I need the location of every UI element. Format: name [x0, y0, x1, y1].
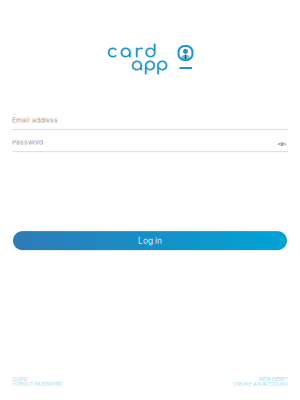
- staticText: Log in: [138, 236, 162, 246]
- staticText: OOPS!: [12, 376, 27, 382]
- button[interactable]: NEW HERE?: [233, 376, 288, 387]
- button[interactable]: Log in: [13, 231, 287, 250]
- staticText: CREATE AN ACCOUNT: [233, 381, 288, 387]
- staticText: card: [106, 41, 157, 62]
- staticText: NEW HERE?: [259, 376, 288, 382]
- button[interactable]: Show password: [280, 140, 288, 145]
- staticText: FORGOT PASSWORD: [12, 381, 63, 387]
- staticText: app: [130, 54, 168, 75]
- button[interactable]: OOPS!: [12, 376, 63, 387]
- staticText: Password: [12, 138, 43, 146]
- staticText: Email address: [12, 116, 58, 124]
